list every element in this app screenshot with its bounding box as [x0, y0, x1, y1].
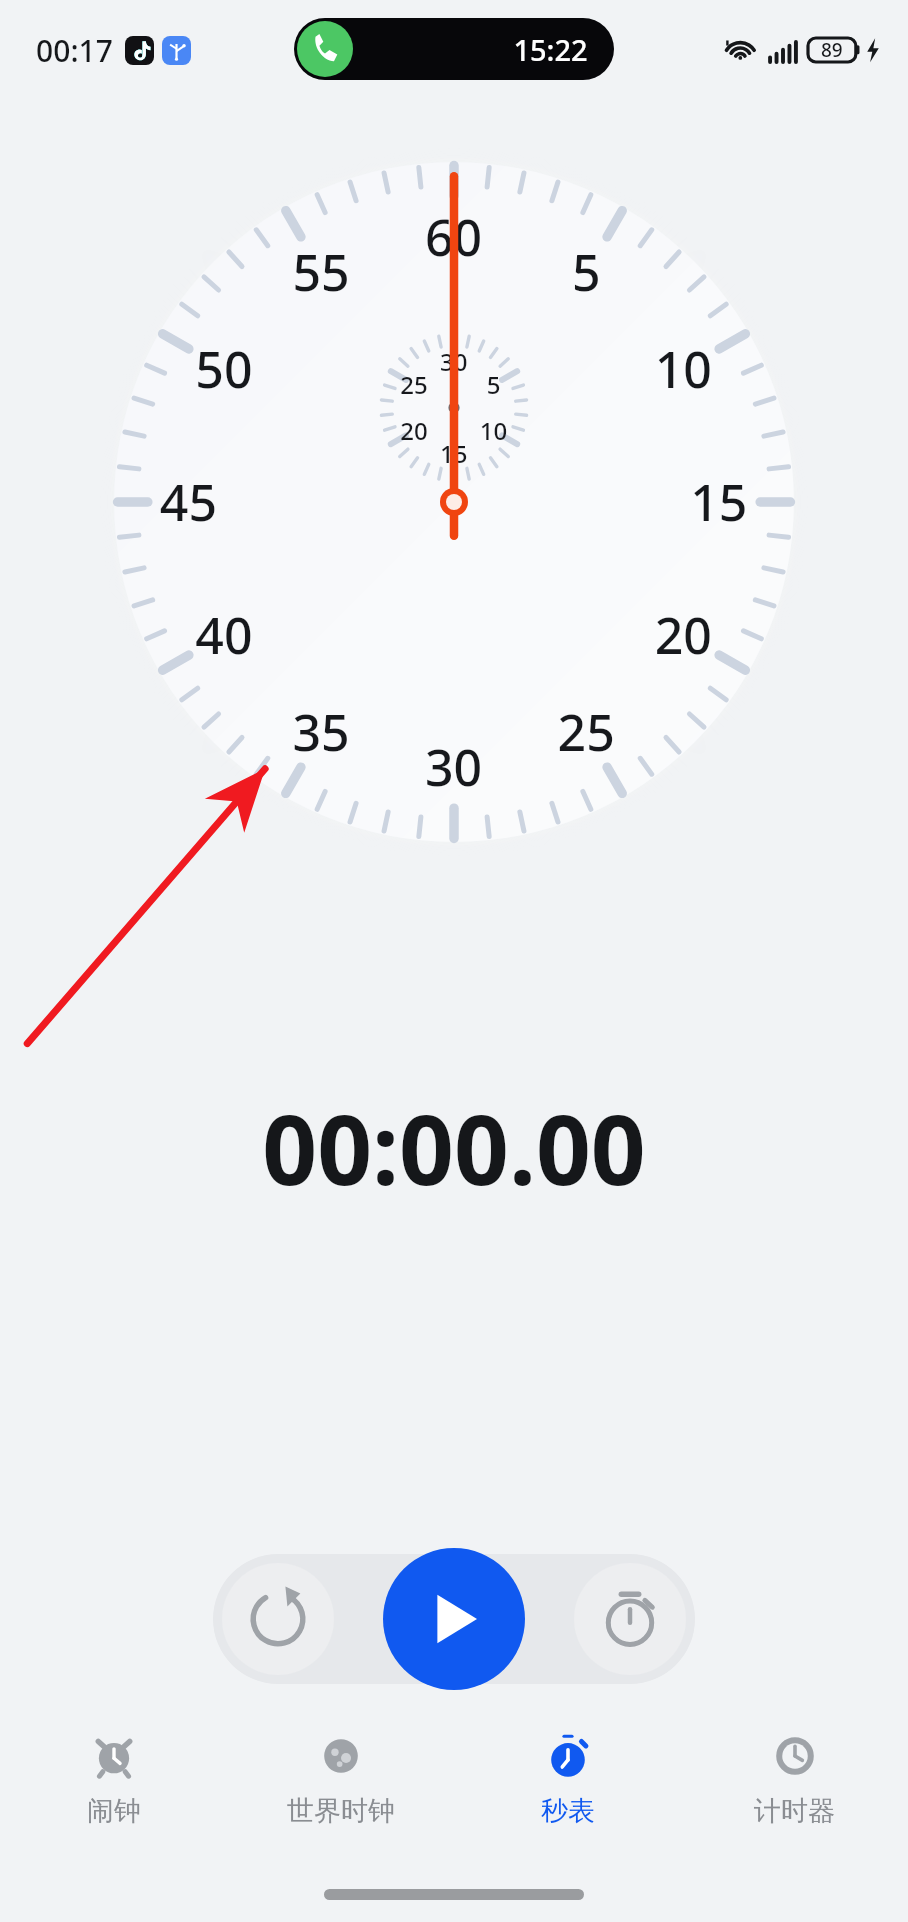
button[interactable]: [454, 1728, 681, 1828]
button[interactable]: [294, 18, 614, 80]
button[interactable]: Reset: [222, 1563, 334, 1675]
button[interactable]: Lap: [574, 1563, 686, 1675]
button[interactable]: [0, 1728, 227, 1828]
button[interactable]: Start: [383, 1548, 525, 1690]
button[interactable]: [681, 1728, 908, 1828]
button[interactable]: [227, 1728, 454, 1828]
